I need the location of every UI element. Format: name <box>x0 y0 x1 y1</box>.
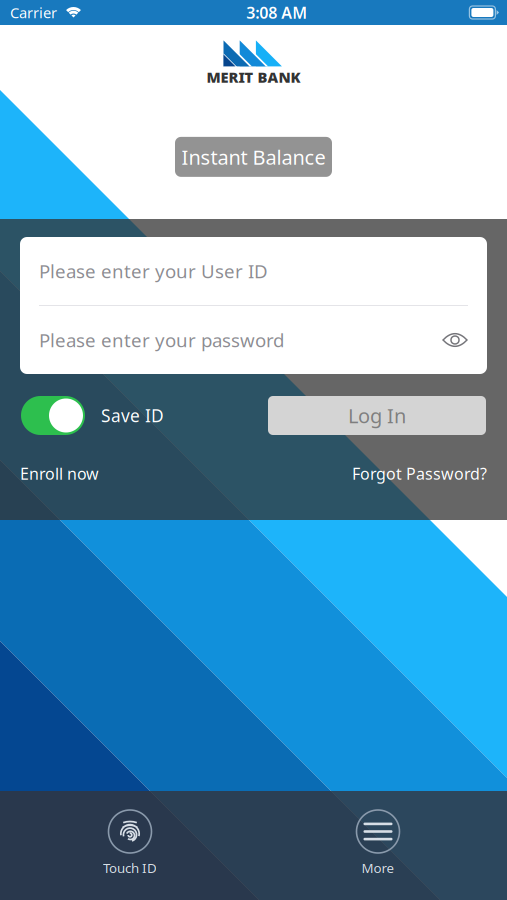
staticText: Enroll now <box>20 463 99 484</box>
staticText: More <box>361 859 394 877</box>
button[interactable]: Log In <box>268 396 486 435</box>
staticText: Carrier <box>10 3 57 22</box>
staticText: Please enter your password <box>39 328 284 352</box>
staticText: Log In <box>348 402 406 429</box>
staticText: Save ID <box>101 404 164 427</box>
staticText: Please enter your User ID <box>39 259 268 283</box>
staticText: 3:08 AM <box>246 2 307 23</box>
staticText: Touch ID <box>103 859 157 877</box>
button[interactable]: Instant Balance <box>175 137 332 177</box>
staticText: Forgot Password? <box>352 463 487 484</box>
button[interactable]: More <box>313 791 443 900</box>
staticText: Instant Balance <box>181 144 325 170</box>
button[interactable]: Show password <box>442 330 468 350</box>
button[interactable]: Enroll now <box>20 463 99 484</box>
button[interactable]: Save ID <box>21 396 164 435</box>
button[interactable]: Touch ID <box>65 791 195 900</box>
staticText: MERIT BANK <box>206 67 300 87</box>
button[interactable]: Forgot Password? <box>352 463 487 484</box>
